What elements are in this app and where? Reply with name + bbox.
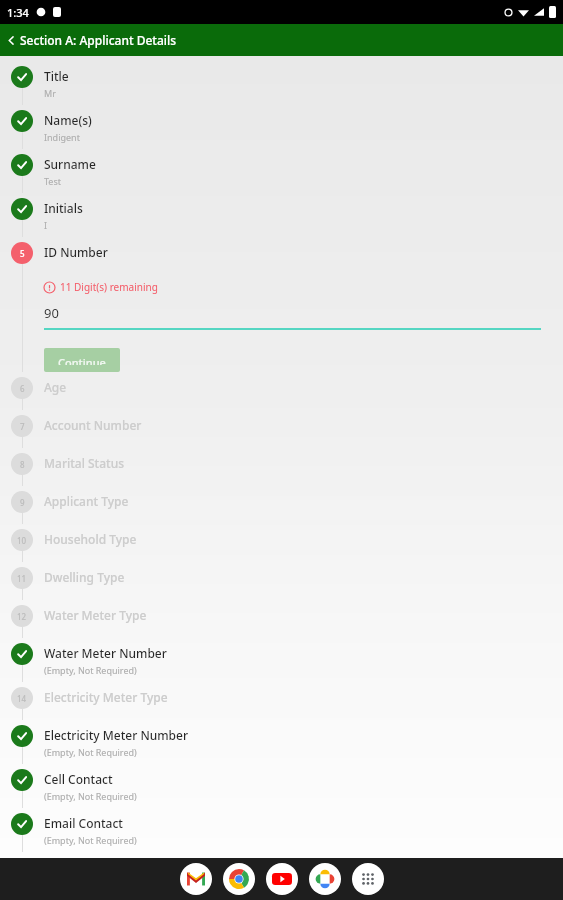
staticText: Applicant Type (44, 493, 129, 509)
button[interactable]: Email Contact (0, 808, 563, 852)
button[interactable]: Cell Contact (0, 764, 563, 808)
staticText: Continue (58, 355, 106, 365)
staticText: 6 (20, 383, 25, 394)
button[interactable]: 8 (0, 448, 563, 486)
staticText: Initials (44, 200, 83, 216)
staticText: 8 (20, 459, 25, 470)
button[interactable]: Title (0, 61, 563, 105)
staticText: 5 (20, 248, 25, 259)
button[interactable]: YouTube (266, 863, 298, 895)
button[interactable]: Initials (0, 193, 563, 237)
button[interactable]: Electricity Meter Number (0, 720, 563, 764)
button[interactable]: Surname (0, 149, 563, 193)
staticText: Email Contact (44, 815, 123, 831)
staticText: I (44, 219, 48, 231)
button[interactable]: Photos (309, 863, 341, 895)
other: Back (5, 34, 18, 47)
staticText: (Empty, Not Required) (44, 790, 137, 802)
staticText: Household Type (44, 531, 137, 547)
staticText: 9 (20, 497, 25, 508)
button[interactable]: Back (0, 24, 563, 56)
staticText: 12 (17, 611, 27, 622)
staticText: 7 (20, 421, 25, 432)
staticText: Electricity Meter Type (44, 689, 168, 705)
staticText: 14 (17, 693, 27, 704)
staticText: Indigent (44, 131, 80, 143)
button[interactable]: Name(s) (0, 105, 563, 149)
button[interactable]: Water Meter Number (0, 638, 563, 682)
staticText: Age (44, 379, 67, 395)
button[interactable]: 6 (0, 372, 563, 410)
staticText: Water Meter Number (44, 645, 167, 661)
staticText: Marital Status (44, 455, 125, 471)
button[interactable]: 9 (0, 486, 563, 524)
staticText: Electricity Meter Number (44, 727, 188, 743)
staticText: Test (44, 175, 62, 187)
staticText: Surname (44, 156, 96, 172)
staticText: (Empty, Not Required) (44, 664, 137, 676)
staticText: Mr (44, 87, 56, 99)
staticText: Title (44, 68, 69, 84)
staticText: (Empty, Not Required) (44, 746, 137, 758)
staticText: Section A: Applicant Details (20, 32, 177, 48)
staticText: Name(s) (44, 112, 92, 128)
staticText: Account Number (44, 417, 142, 433)
staticText: 10 (17, 535, 27, 546)
button[interactable]: 90 (44, 304, 541, 330)
staticText: 1:34 (7, 5, 29, 20)
button[interactable]: 10 (0, 524, 563, 562)
staticText: 11 (17, 573, 27, 584)
button[interactable]: All apps (352, 863, 384, 895)
staticText: (Empty, Not Required) (44, 834, 137, 846)
button[interactable]: ID Number (44, 244, 108, 260)
button[interactable]: 7 (0, 410, 563, 448)
button[interactable]: Chrome (223, 863, 255, 895)
staticText: Dwelling Type (44, 569, 125, 585)
button[interactable]: Gmail (180, 863, 212, 895)
button[interactable]: 14 (0, 682, 563, 720)
button[interactable]: 11 (0, 562, 563, 600)
staticText: Cell Contact (44, 771, 113, 787)
staticText: 90 (44, 304, 59, 322)
button[interactable]: 12 (0, 600, 563, 638)
button[interactable]: Continue (44, 348, 120, 372)
staticText: Water Meter Type (44, 607, 147, 623)
staticText: 11 Digit(s) remaining (60, 280, 158, 294)
